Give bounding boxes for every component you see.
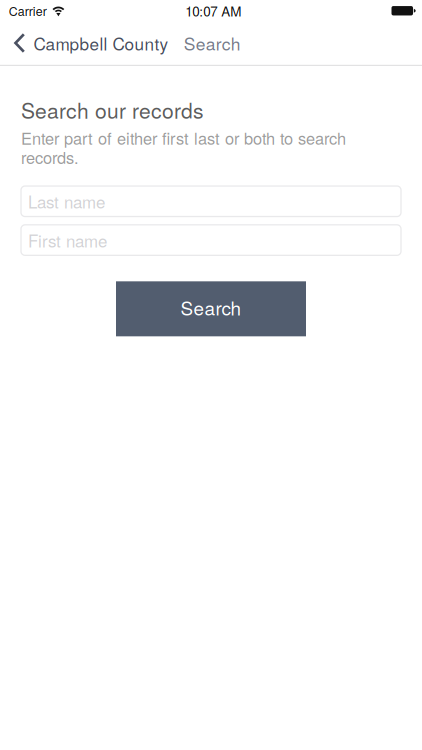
staticText: Last name [28,189,105,213]
button[interactable]: Campbell County [0,23,173,63]
staticText: Search our records [21,95,204,125]
staticText: Campbell County [33,31,168,55]
staticText: Search [184,30,241,55]
staticText: Enter part of either first last or both … [21,126,346,149]
staticText: Search [180,294,241,321]
staticText: Carrier [9,2,47,20]
button[interactable]: First name [21,225,401,255]
staticText: records. [21,145,79,169]
staticText: First name [28,228,107,252]
button[interactable]: Search [116,281,306,336]
staticText: 10:07 AM [185,1,241,20]
button[interactable]: Last name [21,186,401,216]
